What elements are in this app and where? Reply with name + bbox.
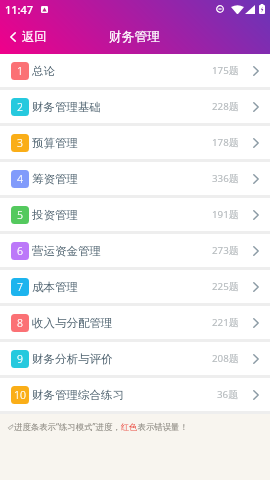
staticText: 总论 (32, 64, 55, 78)
staticText: 营运资金管理 (32, 244, 101, 258)
staticText: 财务分析与评价 (32, 352, 113, 366)
staticText: 5 (17, 208, 23, 222)
button[interactable]: 返回 (0, 23, 55, 50)
button[interactable]: 8 (0, 306, 270, 339)
staticText: 10 (14, 388, 26, 402)
button[interactable]: 2 (0, 90, 270, 123)
other: Do not disturb (216, 5, 224, 13)
staticText: 225题 (212, 280, 239, 293)
staticText: 收入与分配管理 (32, 316, 113, 330)
staticText: 336题 (212, 172, 239, 185)
staticText: 返回 (22, 29, 47, 44)
staticText: 228题 (212, 100, 239, 113)
staticText: 1 (17, 64, 23, 78)
staticText: 筹资管理 (32, 172, 78, 186)
staticText: 8 (17, 316, 23, 330)
staticText: 投资管理 (32, 208, 78, 222)
staticText: 财务管理 (109, 29, 161, 45)
staticText: 进度条表示“练习模式”进度，红色表示错误量！ (14, 421, 188, 432)
staticText: 208题 (212, 352, 239, 365)
staticText: 11:47 (5, 2, 34, 17)
staticText: 成本管理 (32, 280, 78, 294)
staticText: 4 (17, 172, 23, 186)
button[interactable]: 4 (0, 162, 270, 195)
staticText: 221题 (212, 316, 239, 329)
button[interactable]: 5 (0, 198, 270, 231)
staticText: 178题 (212, 136, 239, 149)
staticText: 7 (17, 280, 23, 294)
button[interactable]: 3 (0, 126, 270, 159)
staticText: 273题 (212, 244, 239, 257)
button[interactable]: 9 (0, 342, 270, 375)
staticText: 191题 (212, 208, 239, 221)
button[interactable]: 6 (0, 234, 270, 267)
staticText: 财务管理综合练习 (32, 388, 124, 402)
staticText: 财务管理基础 (32, 100, 101, 114)
staticText: 175题 (212, 64, 239, 77)
button[interactable]: 10 (0, 378, 270, 411)
staticText: 预算管理 (32, 136, 78, 150)
staticText: 9 (17, 352, 23, 366)
staticText: 3 (17, 136, 23, 150)
staticText: 6 (17, 244, 23, 258)
staticText: 36题 (217, 388, 239, 401)
staticText: 2 (17, 100, 23, 114)
button[interactable]: 1 (0, 54, 270, 87)
button[interactable]: 7 (0, 270, 270, 303)
